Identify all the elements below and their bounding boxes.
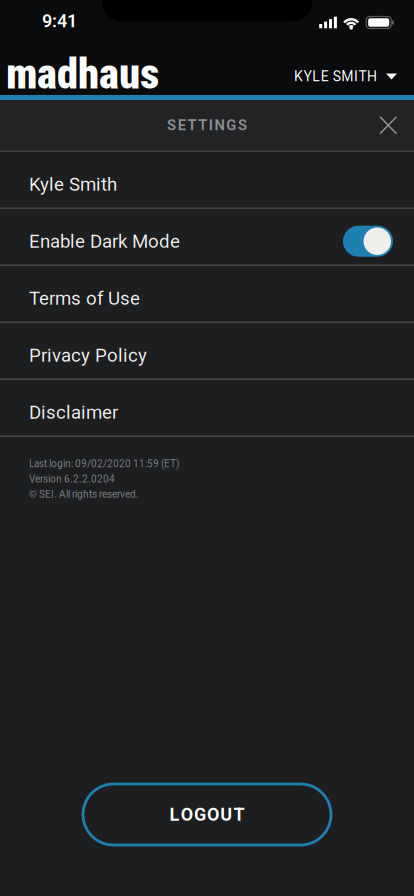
- staticText: I: [209, 117, 213, 134]
- staticText: G: [194, 804, 206, 825]
- staticText: N: [215, 117, 225, 134]
- button[interactable]: L: [83, 784, 331, 845]
- staticText: T: [233, 804, 244, 825]
- staticText: M: [341, 68, 353, 85]
- staticText: L: [312, 68, 320, 85]
- staticText: Disclaimer: [29, 401, 118, 423]
- staticText: Last login: 09/02/2020 11:59 (ET): [29, 458, 179, 470]
- staticText: madhaus: [6, 49, 159, 99]
- staticText: O: [181, 804, 193, 825]
- staticText: 9:41: [42, 10, 77, 32]
- button[interactable]: Disclaimer: [0, 380, 414, 435]
- staticText: T: [187, 117, 196, 134]
- button[interactable]: Terms of Use: [0, 266, 414, 321]
- staticText: Terms of Use: [29, 287, 140, 309]
- staticText: G: [226, 117, 236, 134]
- staticText: U: [220, 804, 232, 825]
- staticText: Privacy Policy: [29, 344, 147, 366]
- button[interactable]: Enable Dark Mode: [0, 209, 414, 264]
- staticText: © SEI. All rights reserved.: [29, 488, 139, 500]
- button[interactable]: Kyle Smith: [0, 152, 414, 207]
- staticText: S: [167, 117, 176, 134]
- button[interactable]: Privacy Policy: [0, 323, 414, 378]
- staticText: K: [294, 68, 303, 85]
- button[interactable]: Close: [379, 116, 414, 134]
- staticText: Version 6.2.2.0204: [29, 473, 115, 485]
- staticText: I: [354, 68, 358, 85]
- staticText: T: [358, 68, 366, 85]
- staticText: H: [367, 68, 377, 85]
- staticText: L: [169, 804, 179, 825]
- staticText: Y: [304, 68, 312, 85]
- staticText: O: [207, 804, 219, 825]
- staticText: Kyle Smith: [29, 173, 117, 195]
- staticText: S: [238, 117, 247, 134]
- staticText: Enable Dark Mode: [29, 230, 180, 252]
- staticText: E: [321, 68, 329, 85]
- button[interactable]: K: [294, 57, 414, 85]
- staticText: E: [178, 117, 186, 134]
- staticText: S: [333, 68, 341, 85]
- staticText: T: [198, 117, 207, 134]
